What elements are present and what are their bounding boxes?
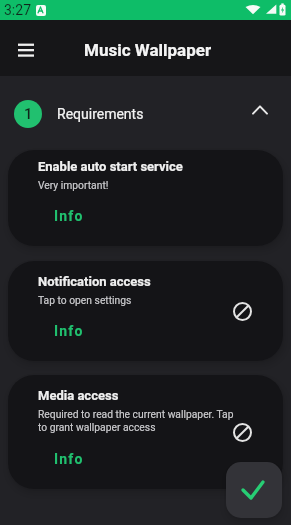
staticText: Info — [54, 208, 84, 224]
staticText: Info — [54, 323, 84, 339]
staticText: Requirements — [57, 106, 144, 122]
button[interactable]: Notification access — [8, 261, 283, 361]
staticText: Notification access — [38, 274, 151, 289]
staticText: Tap to open settings — [38, 294, 132, 306]
staticText: 3:27 — [4, 2, 31, 18]
button[interactable]: 1 — [0, 100, 291, 128]
button[interactable]: Enable auto start service — [8, 150, 283, 246]
staticText: Media access — [38, 388, 119, 403]
staticText: Very important! — [38, 179, 109, 191]
button[interactable]: Info — [50, 202, 88, 230]
button[interactable]: Media access — [8, 375, 283, 489]
staticText: Required to read the current wallpaper. … — [38, 408, 234, 434]
staticText: Music Wallpaper — [84, 40, 212, 60]
button[interactable]: Info — [50, 317, 88, 345]
staticText: 1 — [24, 105, 33, 123]
button[interactable] — [10, 32, 42, 64]
button[interactable]: Info — [50, 445, 88, 473]
staticText: Info — [54, 451, 84, 467]
button[interactable] — [226, 462, 282, 518]
staticText: Enable auto start service — [38, 159, 183, 174]
